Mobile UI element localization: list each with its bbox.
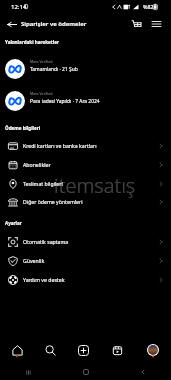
staticText: Ayarlar: [5, 220, 22, 226]
staticText: Güvenlik: [23, 257, 45, 264]
button[interactable]: Menü: [148, 16, 164, 32]
button[interactable]: Geri: [3, 16, 20, 33]
staticText: Meta Verified: [30, 91, 53, 96]
button[interactable]: Oluştur: [72, 339, 94, 361]
staticText: Tamamlandı · 21 Şub: [30, 66, 78, 73]
button[interactable]: Diğer ödeme yöntemleri: [0, 192, 171, 211]
button[interactable]: Mağaza: [106, 339, 128, 361]
staticText: Teslimat bilgileri: [23, 180, 63, 187]
button[interactable]: Alışveriş sepeti: [128, 16, 144, 32]
button[interactable]: Meta Verified: [0, 91, 171, 119]
staticText: Otomatik saptama: [23, 238, 69, 245]
staticText: itemsatış: [54, 172, 136, 199]
staticText: Meta Verified: [30, 59, 53, 64]
button[interactable]: Profil: [142, 339, 164, 361]
button[interactable]: Güvenlik: [0, 251, 171, 270]
staticText: Siparişler ve ödemeler: [21, 20, 87, 28]
staticText: Abonelikler: [23, 161, 51, 168]
staticText: Diğer ödeme yöntemleri: [23, 198, 83, 205]
button[interactable]: Otomatik saptama: [0, 232, 171, 251]
staticText: Ödeme bilgileri: [5, 125, 41, 131]
staticText: 12:14: [11, 3, 27, 11]
staticText: %82: [143, 3, 154, 10]
button[interactable]: Ara: [39, 339, 61, 361]
button[interactable]: Teslimat bilgileri: [0, 174, 171, 193]
button[interactable]: Ana Sayfa: [6, 339, 28, 361]
button[interactable]: Abonelikler: [0, 155, 171, 174]
button[interactable]: Meta Verified: [0, 59, 171, 87]
staticText: Kredi kartları ve banka kartları: [23, 142, 97, 149]
staticText: Para iadesi Yapıldı · 7 Ara 2024: [30, 98, 100, 105]
button[interactable]: Yardım ve destek: [0, 270, 171, 289]
staticText: Yardım ve destek: [23, 276, 65, 283]
button[interactable]: Kredi kartları ve banka kartları: [0, 136, 171, 155]
staticText: Yakınlardaki hareketler: [5, 39, 59, 45]
